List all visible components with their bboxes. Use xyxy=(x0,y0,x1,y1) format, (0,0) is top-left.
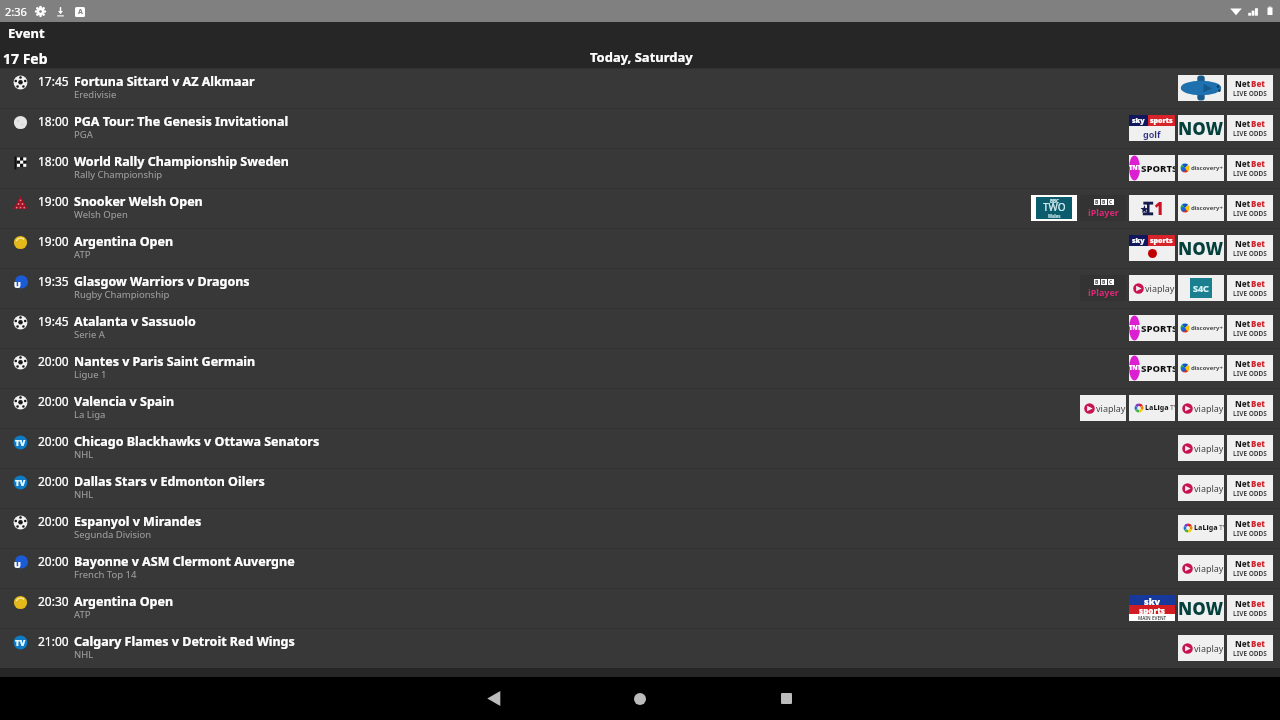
staticText: Bet xyxy=(1251,558,1266,569)
button[interactable]: viaplay xyxy=(1178,555,1224,581)
button[interactable]: netbet xyxy=(1227,315,1273,341)
button[interactable]: 19:00 xyxy=(0,188,1280,228)
button[interactable]: iplayer xyxy=(1080,195,1126,221)
staticText: Net xyxy=(1235,398,1251,409)
button[interactable]: U xyxy=(0,268,1280,308)
staticText: 20:00 xyxy=(38,513,69,529)
button[interactable]: 19:45 xyxy=(0,308,1280,348)
staticText: Espanyol v Mirandes xyxy=(74,513,202,530)
button[interactable]: 20:00 xyxy=(0,348,1280,388)
button[interactable]: netbet xyxy=(1227,155,1273,181)
button[interactable]: tnt2 xyxy=(1129,315,1175,341)
staticText: 2:36 xyxy=(5,4,27,19)
button[interactable]: tnt3 xyxy=(1129,155,1175,181)
button[interactable]: netbet xyxy=(1227,115,1273,141)
button[interactable]: iplayer xyxy=(1080,275,1126,301)
button[interactable]: bbctwo xyxy=(1031,195,1077,221)
button[interactable]: 18:00 xyxy=(0,148,1280,188)
staticText: Rally Championship xyxy=(74,168,163,181)
staticText: Bet xyxy=(1251,278,1266,289)
button[interactable]: now xyxy=(1178,595,1224,621)
staticText: Net xyxy=(1235,558,1251,569)
button[interactable]: euro1 xyxy=(1129,195,1175,221)
button[interactable]: Home xyxy=(590,677,690,720)
button[interactable]: netbet xyxy=(1227,555,1273,581)
staticText: Ligue 1 xyxy=(74,368,107,381)
staticText: viaplay xyxy=(1194,402,1224,414)
staticText: Bet xyxy=(1251,238,1266,249)
staticText: Bayonne v ASM Clermont Auvergne xyxy=(74,553,295,570)
button[interactable]: discovery xyxy=(1178,315,1224,341)
staticText: Net xyxy=(1235,358,1251,369)
button[interactable]: netbet xyxy=(1227,275,1273,301)
button[interactable]: netbet xyxy=(1227,635,1273,661)
staticText: World Rally Championship Sweden xyxy=(74,153,289,170)
button[interactable]: 19:00 xyxy=(0,228,1280,268)
button[interactable]: 20:00 xyxy=(0,508,1280,548)
button[interactable]: skyred xyxy=(1129,235,1175,261)
button[interactable]: TV xyxy=(0,428,1280,468)
button[interactable]: laliga xyxy=(1129,395,1175,421)
button[interactable]: Event xyxy=(0,22,1280,49)
button[interactable]: netbet xyxy=(1227,515,1273,541)
button[interactable]: discovery xyxy=(1178,355,1224,381)
button[interactable]: Recent apps xyxy=(736,677,836,720)
button[interactable]: espn xyxy=(1178,75,1224,101)
button[interactable]: now xyxy=(1178,235,1224,261)
button[interactable]: viaplay xyxy=(1178,435,1224,461)
button[interactable]: laliga xyxy=(1178,515,1224,541)
button[interactable]: 18:00 xyxy=(0,108,1280,148)
staticText: LaLiga xyxy=(1194,523,1218,533)
staticText: C xyxy=(1109,199,1113,205)
button[interactable]: Back xyxy=(444,677,544,720)
button[interactable]: now xyxy=(1178,115,1224,141)
staticText: TV xyxy=(15,437,26,448)
staticText: Bet xyxy=(1251,598,1266,609)
button[interactable]: TV xyxy=(0,468,1280,508)
staticText: NHL xyxy=(74,488,94,501)
staticText: 17 Feb xyxy=(3,49,48,68)
staticText: U xyxy=(14,278,21,290)
staticText: viaplay xyxy=(1145,282,1175,294)
staticText: Snooker Welsh Open xyxy=(74,193,203,210)
button[interactable]: viaplay xyxy=(1178,475,1224,501)
button[interactable]: tnt1 xyxy=(1129,355,1175,381)
button[interactable]: netbet xyxy=(1227,235,1273,261)
button[interactable]: 20:00 xyxy=(0,388,1280,428)
button[interactable]: viaplay xyxy=(1178,395,1224,421)
button[interactable]: viaplay xyxy=(1129,275,1175,301)
button[interactable]: netbet xyxy=(1227,355,1273,381)
staticText: discovery+ xyxy=(1191,204,1223,212)
staticText: Bet xyxy=(1251,318,1266,329)
button[interactable]: U xyxy=(0,548,1280,588)
staticText: 18:00 xyxy=(38,113,69,129)
button[interactable]: netbet xyxy=(1227,75,1273,101)
button[interactable]: 20:30 xyxy=(0,588,1280,628)
staticText: NOW xyxy=(1178,237,1224,260)
button[interactable]: netbet xyxy=(1227,195,1273,221)
staticText: Net xyxy=(1235,438,1251,449)
staticText: Net xyxy=(1235,78,1251,89)
staticText: 20:00 xyxy=(38,433,69,449)
button[interactable]: s4c xyxy=(1178,275,1224,301)
button[interactable]: viaplay xyxy=(1178,635,1224,661)
staticText: TV xyxy=(15,477,26,488)
staticText: PGA xyxy=(74,128,93,141)
button[interactable]: discovery xyxy=(1178,195,1224,221)
staticText: Bet xyxy=(1251,198,1266,209)
button[interactable]: skymain xyxy=(1129,595,1175,621)
staticText: Bet xyxy=(1251,118,1266,129)
staticText: Bet xyxy=(1251,78,1266,89)
staticText: iPlayer xyxy=(1088,286,1119,298)
button[interactable]: skygolf xyxy=(1129,115,1175,141)
button[interactable]: netbet xyxy=(1227,395,1273,421)
button[interactable]: netbet xyxy=(1227,475,1273,501)
button[interactable]: TV xyxy=(0,628,1280,668)
button[interactable]: netbet xyxy=(1227,595,1273,621)
staticText: B xyxy=(1102,279,1106,285)
button[interactable]: discovery xyxy=(1178,155,1224,181)
button[interactable]: netbet xyxy=(1227,435,1273,461)
button[interactable]: 17:45 xyxy=(0,68,1280,108)
button[interactable]: viaplay xyxy=(1080,395,1126,421)
staticText: Net xyxy=(1235,278,1251,289)
